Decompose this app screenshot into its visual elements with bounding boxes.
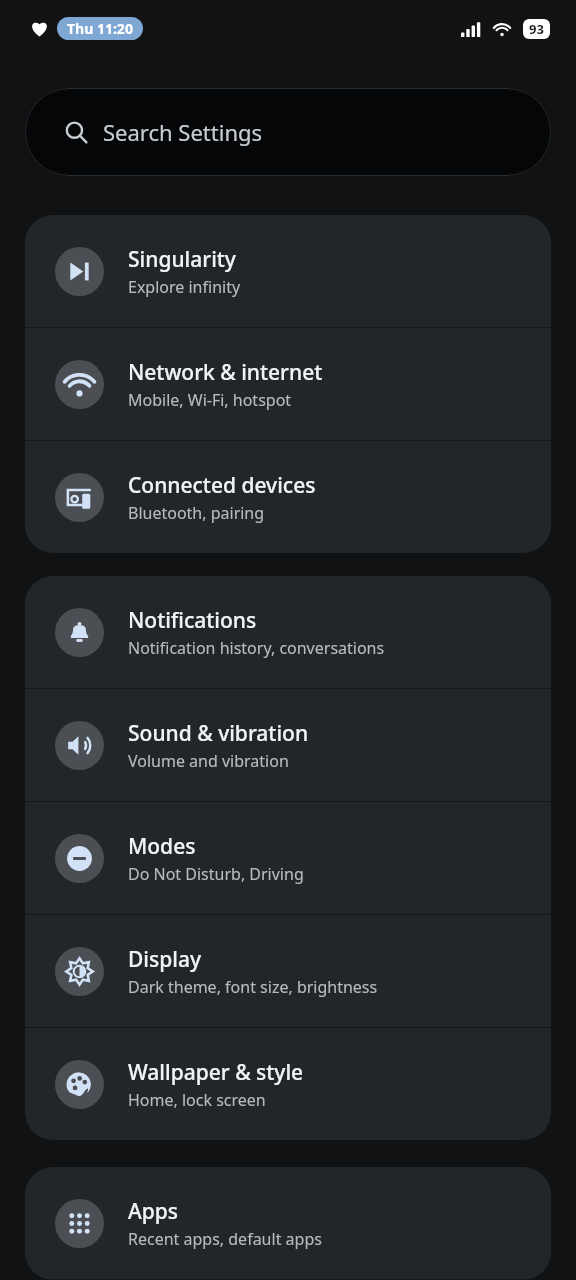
- staticText: Mobile, Wi-Fi, hotspot: [128, 389, 292, 411]
- button[interactable]: Singularity: [25, 215, 551, 327]
- staticText: Network & internet: [128, 358, 323, 387]
- staticText: Volume and vibration: [128, 750, 289, 772]
- button[interactable]: Network & internet: [25, 328, 551, 440]
- staticText: Apps: [128, 1197, 179, 1226]
- staticText: Home, lock screen: [128, 1089, 266, 1111]
- button[interactable]: Connected devices: [25, 441, 551, 553]
- staticText: Wallpaper & style: [128, 1058, 304, 1087]
- staticText: Recent apps, default apps: [128, 1228, 322, 1250]
- button[interactable]: Display: [25, 915, 551, 1027]
- staticText: Notification history, conversations: [128, 637, 385, 659]
- staticText: Search Settings: [103, 117, 263, 147]
- staticText: Notifications: [128, 606, 257, 635]
- button[interactable]: Modes: [25, 802, 551, 914]
- staticText: Bluetooth, pairing: [128, 502, 265, 524]
- button[interactable]: Wallpaper & style: [25, 1028, 551, 1140]
- button[interactable]: Search Settings: [25, 88, 551, 176]
- staticText: Connected devices: [128, 471, 316, 500]
- staticText: Do Not Disturb, Driving: [128, 863, 304, 885]
- staticText: Modes: [128, 832, 196, 861]
- staticText: 93: [529, 20, 544, 38]
- staticText: Explore infinity: [128, 276, 241, 298]
- staticText: Dark theme, font size, brightness: [128, 976, 378, 998]
- staticText: Sound & vibration: [128, 719, 309, 748]
- button[interactable]: Apps: [25, 1167, 551, 1279]
- button[interactable]: Sound & vibration: [25, 689, 551, 801]
- staticText: Thu 11:20: [67, 19, 133, 38]
- staticText: Display: [128, 945, 202, 974]
- staticText: Singularity: [128, 245, 236, 274]
- button[interactable]: Notifications: [25, 576, 551, 688]
